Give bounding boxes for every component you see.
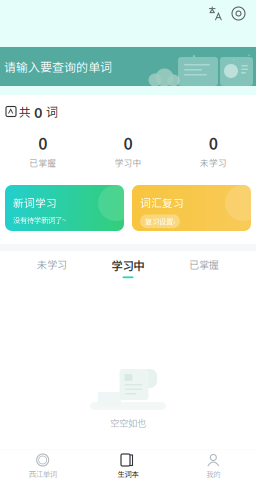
staticText: 共 [16,103,34,120]
staticText: 未学习 [37,257,67,271]
button[interactable]: 已掌握 [166,251,242,280]
staticText: 已掌握 [29,156,56,169]
button[interactable]: 未学习 [14,251,90,280]
staticText: 词 [43,103,58,120]
staticText: 复习设置› [145,216,175,226]
staticText: 未学习 [200,156,227,169]
staticText: 新词学习 [13,195,57,210]
staticText: 我的 [206,468,220,479]
button[interactable]: 生词本 [85,453,171,479]
staticText: 0 [38,131,47,154]
button[interactable]: 学习中 [90,251,166,280]
button[interactable]: Settings [231,6,246,21]
staticText: 学习中 [111,257,144,273]
button[interactable]: 词汇复习 [132,185,251,231]
staticText: 词汇复习 [140,195,184,210]
button[interactable]: 新词学习 [5,185,124,231]
staticText: 没有待学新词了~ [13,214,66,225]
button[interactable]: 我的 [171,453,256,479]
staticText: 0 [34,101,43,122]
staticText: 西江单词 [29,468,57,479]
button[interactable]: 西江单词 [0,453,85,479]
staticText: 学习中 [114,156,141,169]
button[interactable]: Translate [208,6,223,21]
staticText: 0 [209,131,218,154]
staticText: 空空如也 [110,416,146,429]
staticText: 请输入要查询的单词 [4,58,112,75]
staticText: 生词本 [117,468,138,479]
staticText: 0 [123,131,132,154]
staticText: 已掌握 [189,257,219,271]
